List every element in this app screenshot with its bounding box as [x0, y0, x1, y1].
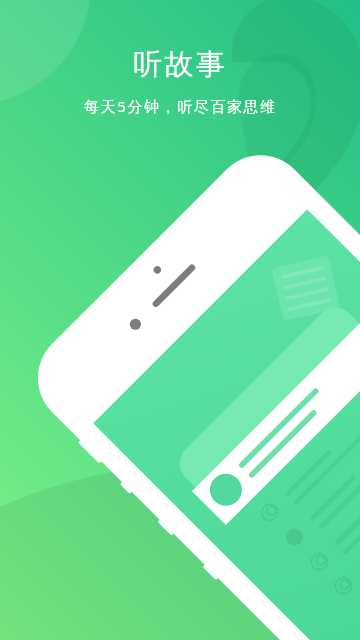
staticText: 听故事: [133, 46, 228, 83]
staticText: 每天5分钟，听尽百家思维: [84, 96, 277, 116]
